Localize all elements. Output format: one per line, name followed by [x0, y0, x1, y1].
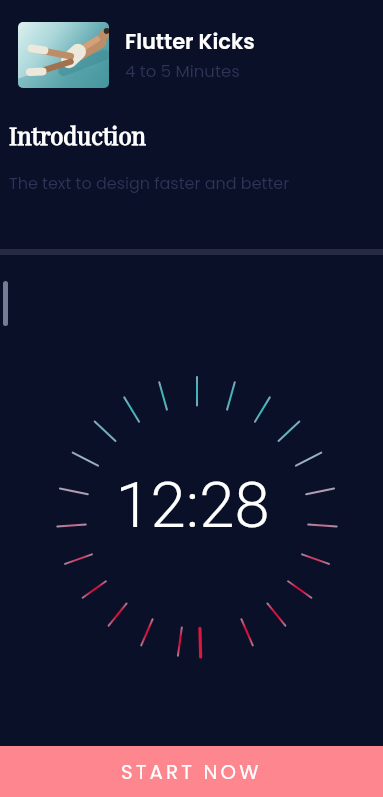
- staticText: The text to design faster and better: [9, 172, 290, 194]
- staticText: START NOW: [121, 758, 262, 786]
- staticText: 12:28: [1, 468, 383, 542]
- button[interactable]: Exercise preview: [18, 22, 109, 88]
- staticText: Introduction: [9, 119, 146, 151]
- staticText: 4 to 5 Minutes: [125, 60, 240, 83]
- staticText: Flutter Kicks: [125, 27, 255, 56]
- button[interactable]: START NOW: [0, 746, 383, 797]
